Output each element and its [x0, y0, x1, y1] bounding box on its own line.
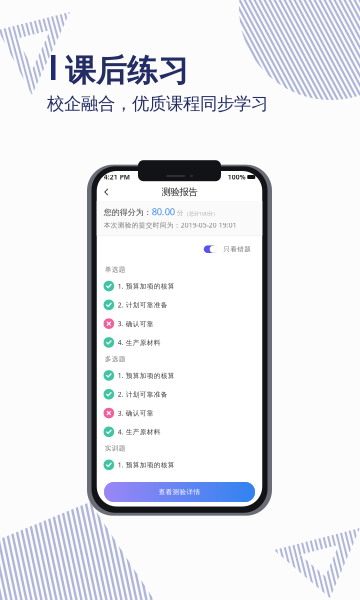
staticText: 1. 预算加项的核算 — [118, 282, 175, 290]
staticText: 1. 预算加项的核算 — [118, 371, 175, 380]
staticText: 80.00 — [152, 205, 175, 218]
staticText: 3. 确认可靠 — [118, 409, 154, 417]
staticText: 多选题 — [105, 355, 126, 363]
staticText: 2. 计划可靠准备 — [118, 300, 168, 309]
staticText: 测验报告 — [161, 186, 197, 198]
staticText: 查看测验详情 — [158, 488, 200, 496]
button[interactable]: 1. 预算加项的核算 — [97, 366, 262, 385]
button[interactable]: 2. 计划可靠准备 — [97, 295, 262, 314]
staticText: （总分100分） — [184, 210, 218, 217]
button[interactable]: 3. 确认可靠 — [97, 404, 262, 422]
staticText: 4. 生产原材料 — [118, 338, 161, 347]
button[interactable]: 3. 确认可靠 — [97, 314, 262, 333]
staticText: 课后练习 — [65, 52, 189, 90]
button[interactable]: 4. 生产原材料 — [97, 333, 262, 352]
button[interactable]: 2. 计划可靠准备 — [97, 385, 262, 404]
staticText: 实训题 — [105, 444, 126, 452]
button[interactable]: 只看错题 — [202, 245, 218, 254]
staticText: 3. 确认可靠 — [118, 319, 154, 328]
staticText: 单选题 — [105, 265, 126, 274]
staticText: 4:21 PM — [104, 173, 130, 181]
staticText: 4. 生产原材料 — [118, 427, 161, 436]
button[interactable]: 1. 预算加项的核算 — [97, 277, 262, 295]
button[interactable]: 1. 预算加项的核算 — [97, 455, 262, 474]
staticText: 100% — [228, 173, 246, 181]
staticText: 分 — [175, 209, 184, 217]
staticText: 校企融合，优质课程同步学习 — [47, 93, 268, 114]
button[interactable]: 查看测验详情 — [104, 477, 255, 506]
staticText: 2. 计划可靠准备 — [118, 390, 168, 399]
staticText: 1. 预算加项的核算 — [118, 460, 175, 469]
button[interactable]: 4. 生产原材料 — [97, 422, 262, 441]
staticText: 您的得分为： — [104, 207, 152, 217]
staticText: 本次测验的提交时间为：2019-05-20 19:01 — [104, 220, 237, 229]
staticText: 只看错题 — [223, 245, 251, 253]
button[interactable]: 返回 — [101, 185, 112, 199]
